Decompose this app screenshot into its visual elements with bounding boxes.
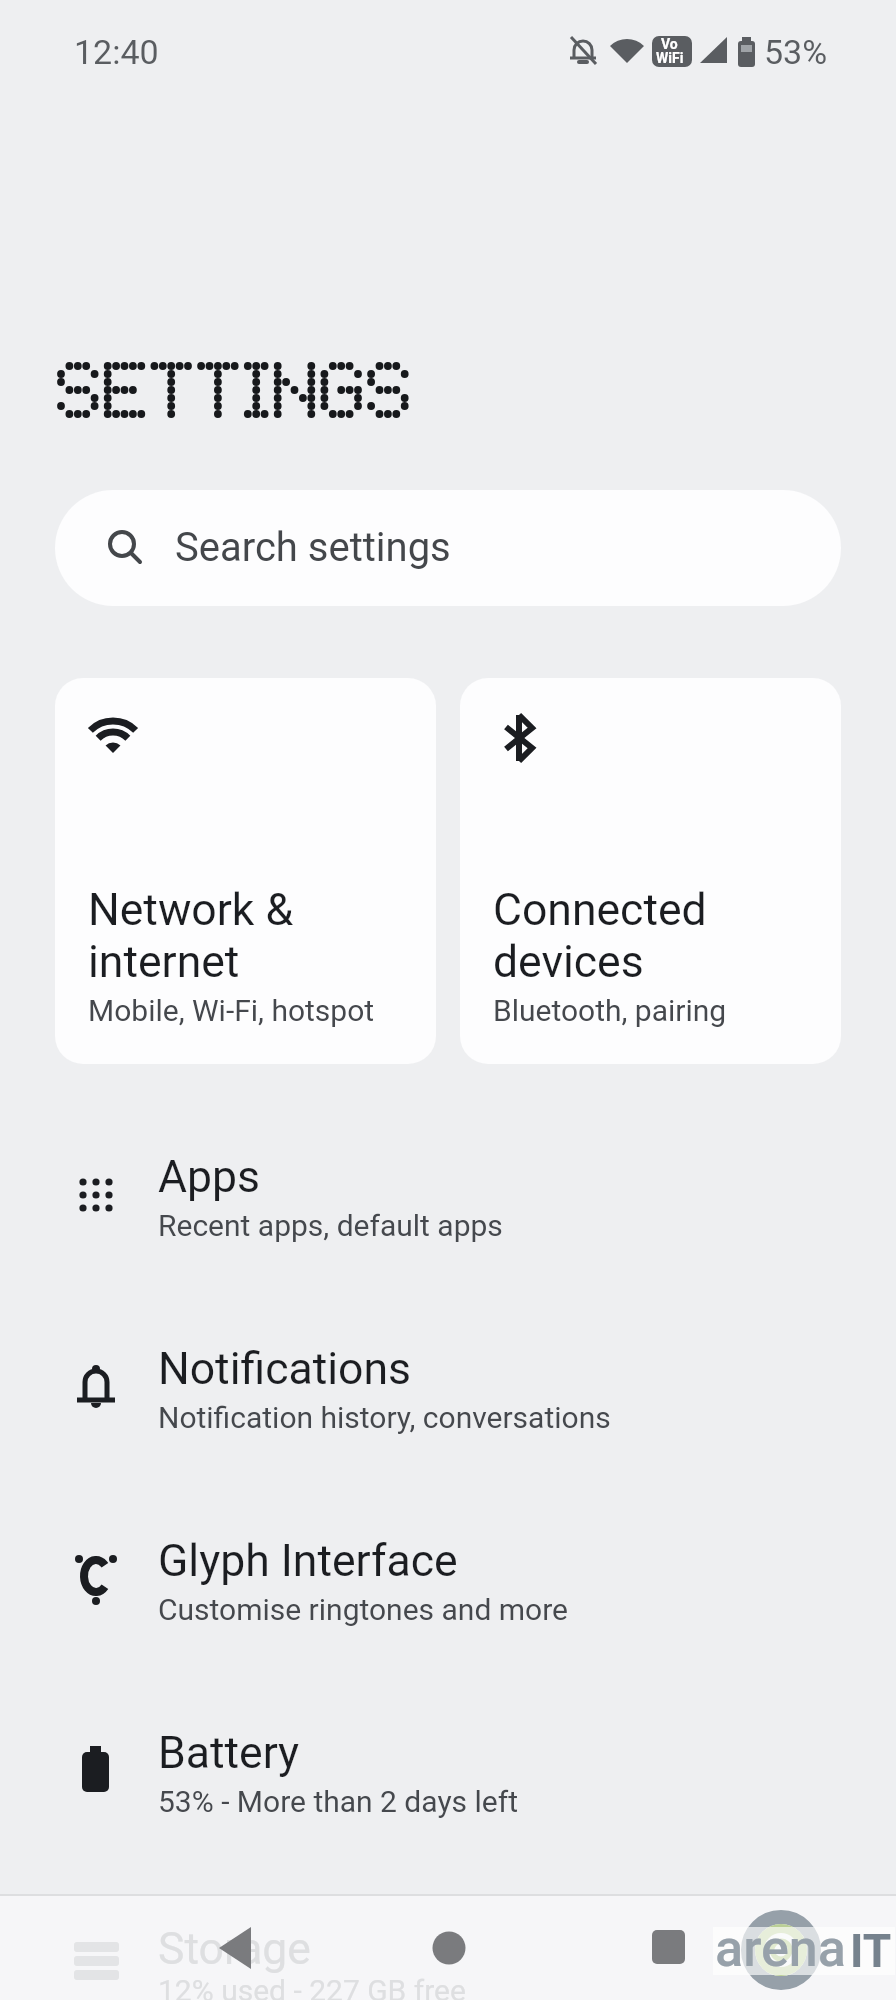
staticText: Notifications	[158, 1343, 411, 1395]
button[interactable]	[205, 1915, 275, 1985]
button[interactable]	[414, 1915, 484, 1985]
staticText: WiFi	[656, 50, 684, 66]
staticText: Battery	[158, 1727, 300, 1779]
button[interactable]: Network & internet	[55, 678, 436, 1064]
staticText: Connected devices	[493, 884, 707, 988]
staticText: Network & internet	[88, 884, 294, 988]
button[interactable]: Apps	[0, 1100, 896, 1250]
staticText: Glyph Interface	[158, 1535, 458, 1587]
staticText: Notification history, conversations	[158, 1400, 611, 1435]
button[interactable]: Search settings	[55, 490, 841, 606]
staticText: Storage	[158, 1923, 311, 1975]
staticText: 12:40	[74, 32, 159, 72]
button[interactable]: Battery	[0, 1676, 896, 1826]
button[interactable]: Connected devices	[460, 678, 841, 1064]
staticText: arena	[715, 1918, 846, 1979]
staticText: 53% - More than 2 days left	[158, 1784, 518, 1819]
button[interactable]: Glyph Interface	[0, 1484, 896, 1634]
staticText: 12% used - 227 GB free	[158, 1973, 466, 2000]
staticText: Search settings	[175, 524, 451, 571]
staticText: IT	[850, 1924, 892, 1978]
staticText: Customise ringtones and more	[158, 1592, 568, 1627]
staticText: Bluetooth, pairing	[493, 993, 727, 1028]
staticText: Apps	[158, 1151, 260, 1203]
button[interactable]	[633, 1915, 703, 1985]
staticText: Mobile, Wi-Fi, hotspot	[88, 993, 375, 1028]
staticText: Vo	[661, 36, 678, 52]
button[interactable]: Notifications	[0, 1292, 896, 1442]
staticText: Recent apps, default apps	[158, 1208, 503, 1243]
staticText: 53%	[764, 32, 828, 72]
